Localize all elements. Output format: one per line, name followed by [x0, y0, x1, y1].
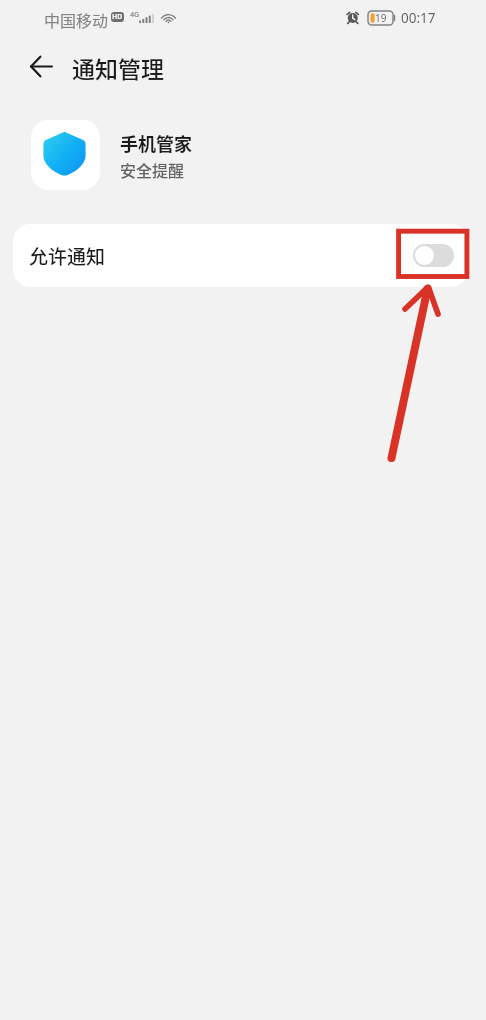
staticText: 允许通知	[29, 242, 106, 270]
button[interactable]: Allow notifications, off	[413, 244, 454, 267]
staticText: 手机管家	[120, 130, 192, 156]
staticText: 00:17	[401, 9, 436, 27]
staticText: 中国移动	[44, 8, 109, 31]
staticText: HD	[112, 12, 123, 22]
button[interactable]: 允许通知	[13, 224, 468, 287]
staticText: 安全提醒	[120, 158, 185, 181]
button[interactable]: 手机管家	[31, 120, 192, 190]
staticText: 19	[375, 11, 387, 25]
staticText: 4G	[130, 9, 140, 19]
button[interactable]: Back	[19, 44, 64, 89]
staticText: 通知管理	[72, 51, 164, 84]
